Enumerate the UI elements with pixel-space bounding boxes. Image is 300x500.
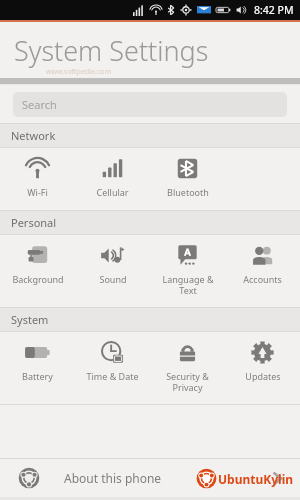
staticText: System — [11, 312, 49, 327]
staticText: Search — [22, 97, 57, 112]
staticText: Battery — [22, 370, 53, 382]
button[interactable]: Bluetooth — [150, 148, 225, 210]
button[interactable]: Sound — [75, 235, 150, 307]
staticText: Updates — [245, 370, 281, 382]
button[interactable]: Language & Text — [150, 235, 225, 307]
staticText: Wi-Fi — [27, 186, 48, 198]
staticText: 8:42 PM — [254, 3, 294, 17]
staticText: Time & Date — [86, 370, 139, 382]
button[interactable]: Cellular — [75, 148, 150, 210]
button[interactable]: Background — [0, 235, 75, 307]
staticText: Language & Text — [162, 273, 214, 296]
staticText: Sound — [99, 273, 127, 285]
staticText: UbuntuKylin — [218, 471, 294, 487]
button[interactable]: Battery — [0, 332, 75, 404]
button[interactable]: Wi-Fi — [0, 148, 75, 210]
button[interactable]: Security & Privacy — [150, 332, 225, 404]
staticText: Personal — [11, 215, 57, 230]
other: About this phone — [18, 467, 40, 489]
staticText: www.softpedia.com — [46, 67, 111, 77]
staticText: Cellular — [96, 186, 129, 198]
button[interactable]: Search — [13, 92, 287, 117]
staticText: Background — [12, 273, 64, 285]
staticText: System Settings — [14, 32, 209, 69]
staticText: Accounts — [243, 273, 282, 285]
staticText: Security & Privacy — [166, 370, 209, 393]
staticText: About this phone — [64, 470, 162, 486]
staticText: Network — [11, 128, 56, 143]
button[interactable]: About this phone — [0, 459, 300, 497]
button[interactable]: Updates — [225, 332, 300, 404]
staticText: Bluetooth — [167, 186, 209, 198]
button[interactable]: Accounts — [225, 235, 300, 307]
button[interactable]: Time & Date — [75, 332, 150, 404]
